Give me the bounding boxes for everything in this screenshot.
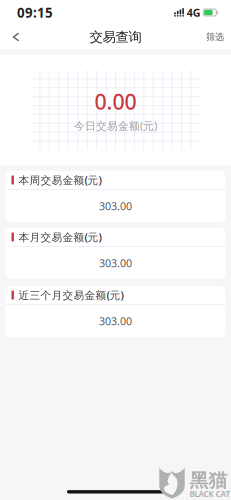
button[interactable]: 筛选: [200, 25, 230, 49]
staticText: 303.00: [99, 314, 132, 328]
staticText: 303.00: [99, 256, 132, 270]
staticText: 本周交易金额(元): [18, 173, 101, 187]
staticText: 交易查询: [89, 29, 141, 45]
button[interactable]: 返回: [3, 25, 29, 49]
staticText: 4G: [187, 5, 201, 20]
button[interactable]: 本月交易金额(元): [5, 228, 225, 279]
button[interactable]: 本周交易金额(元): [5, 171, 225, 222]
staticText: 近三个月交易金额(元): [18, 288, 123, 302]
staticText: 今日交易金额(元): [74, 119, 157, 133]
staticText: 筛选: [206, 31, 224, 43]
staticText: 303.00: [99, 199, 132, 213]
staticText: BLACK CAT: [189, 489, 230, 499]
button[interactable]: 近三个月交易金额(元): [5, 286, 225, 337]
staticText: 黑猫: [189, 469, 227, 492]
staticText: 09:15: [17, 4, 53, 21]
staticText: 0.00: [94, 87, 136, 116]
staticText: 本月交易金额(元): [18, 230, 101, 244]
